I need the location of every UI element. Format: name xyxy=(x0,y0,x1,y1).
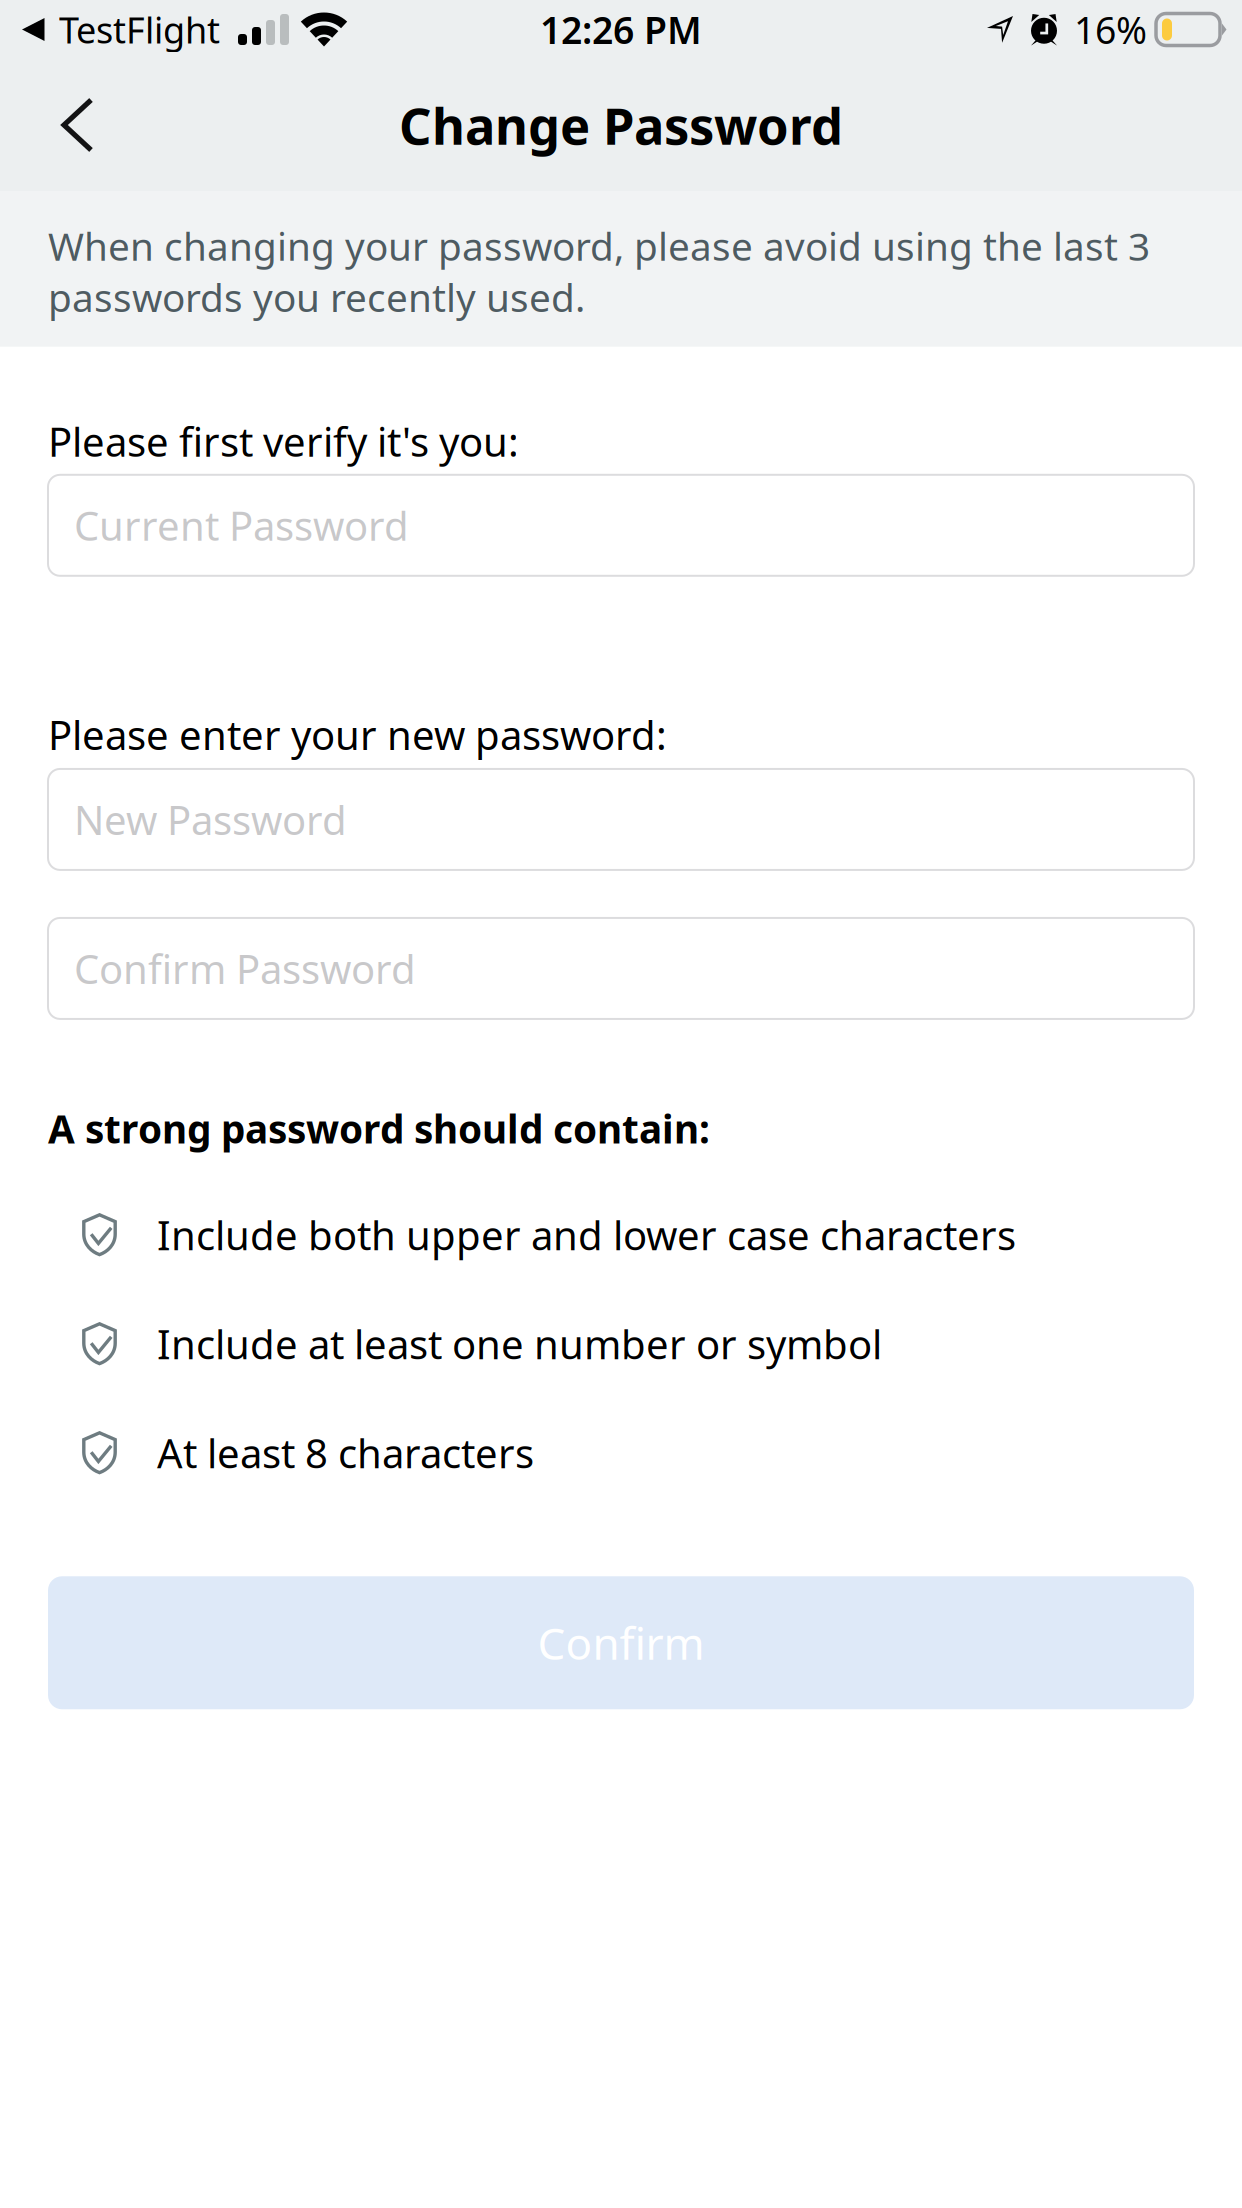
staticText: When changing your password, please avoi… xyxy=(48,220,1150,323)
staticText: 12:26 PM xyxy=(540,5,702,54)
staticText: 16% xyxy=(1074,5,1147,54)
staticText: Include at least one number or symbol xyxy=(157,1317,882,1370)
staticText: Include both upper and lower case charac… xyxy=(157,1208,1016,1261)
staticText: TestFlight xyxy=(59,6,220,53)
staticText: Confirm Password xyxy=(74,942,416,995)
staticText: A strong password should contain: xyxy=(48,1103,710,1154)
button[interactable]: Current Password xyxy=(48,475,1194,576)
button[interactable]: New Password xyxy=(48,769,1194,870)
staticText: Please first verify it's you: xyxy=(48,415,519,468)
button[interactable]: Back xyxy=(0,71,131,179)
button[interactable]: Confirm xyxy=(48,1576,1194,1709)
button[interactable]: Confirm Password xyxy=(48,918,1194,1019)
staticText: Current Password xyxy=(74,499,409,552)
staticText: Change Password xyxy=(399,91,843,159)
staticText: New Password xyxy=(74,793,347,846)
staticText: At least 8 characters xyxy=(157,1426,534,1479)
staticText: Please enter your new password: xyxy=(48,708,667,761)
staticText: Confirm xyxy=(537,1614,704,1672)
